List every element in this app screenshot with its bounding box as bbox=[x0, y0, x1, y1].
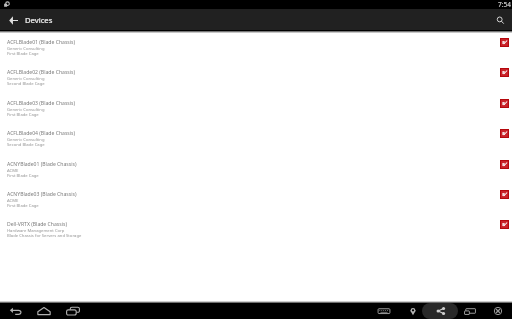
button[interactable]: Search bbox=[490, 10, 510, 30]
button[interactable]: Edit bbox=[500, 38, 509, 47]
button[interactable]: Edit bbox=[500, 160, 509, 169]
button[interactable]: Recents bbox=[65, 303, 81, 319]
staticText: ACNYBlade01 (Blade Chassis) bbox=[7, 161, 77, 168]
button[interactable]: ACFLBlade01 (Blade Chassis) bbox=[0, 39, 512, 69]
staticText: Blade Chassis for Servers and Storage bbox=[7, 233, 82, 239]
button[interactable]: Home bbox=[36, 303, 52, 319]
button[interactable]: Back bbox=[8, 303, 24, 319]
button[interactable]: Edit bbox=[500, 129, 509, 138]
button[interactable]: Keyboard bbox=[376, 303, 392, 319]
button[interactable]: Edit bbox=[500, 190, 509, 199]
button[interactable]: ACFLBlade04 (Blade Chassis) bbox=[0, 130, 512, 160]
button[interactable]: Edit bbox=[500, 220, 509, 229]
button[interactable]: Close bbox=[490, 303, 506, 319]
button[interactable]: ACNYBlade03 (Blade Chassis) bbox=[0, 191, 512, 221]
staticText: Second Blade Cage bbox=[7, 81, 45, 87]
button[interactable]: ACNYBlade01 (Blade Chassis) bbox=[0, 161, 512, 191]
staticText: First Blade Cage bbox=[7, 203, 39, 209]
staticText: 7:54 bbox=[498, 0, 511, 9]
button[interactable]: Location bbox=[405, 303, 421, 319]
staticText: Second Blade Cage bbox=[7, 142, 45, 148]
staticText: ACFLBlade04 (Blade Chassis) bbox=[7, 130, 76, 137]
button[interactable]: Edit bbox=[500, 99, 509, 108]
staticText: Generic Consulting bbox=[7, 107, 45, 113]
staticText: Generic Consulting bbox=[7, 137, 45, 143]
staticText: First Blade Cage bbox=[7, 173, 39, 179]
staticText: First Blade Cage bbox=[7, 112, 39, 118]
staticText: Devices bbox=[25, 15, 53, 25]
staticText: ACFLBlade01 (Blade Chassis) bbox=[7, 39, 76, 46]
button[interactable]: Edit bbox=[500, 68, 509, 77]
staticText: ACFLBlade02 (Blade Chassis) bbox=[7, 69, 76, 76]
staticText: First Blade Cage bbox=[7, 51, 39, 57]
staticText: ACME bbox=[7, 198, 19, 204]
staticText: ACME bbox=[7, 168, 19, 174]
button[interactable]: Screenshot bbox=[462, 303, 478, 319]
button[interactable]: ACFLBlade03 (Blade Chassis) bbox=[0, 100, 512, 130]
staticText: Hardware Management Corp bbox=[7, 228, 65, 234]
button[interactable]: ACFLBlade02 (Blade Chassis) bbox=[0, 69, 512, 99]
staticText: Generic Consulting bbox=[7, 76, 45, 82]
staticText: Generic Consulting bbox=[7, 46, 45, 52]
button[interactable]: Share bbox=[433, 303, 449, 319]
staticText: ACFLBlade03 (Blade Chassis) bbox=[7, 100, 76, 107]
staticText: Dell-VRTX (Blade Chassis) bbox=[7, 221, 67, 228]
button[interactable]: Dell-VRTX (Blade Chassis) bbox=[0, 221, 512, 251]
button[interactable]: Back bbox=[3, 10, 23, 30]
staticText: ACNYBlade03 (Blade Chassis) bbox=[7, 191, 77, 198]
